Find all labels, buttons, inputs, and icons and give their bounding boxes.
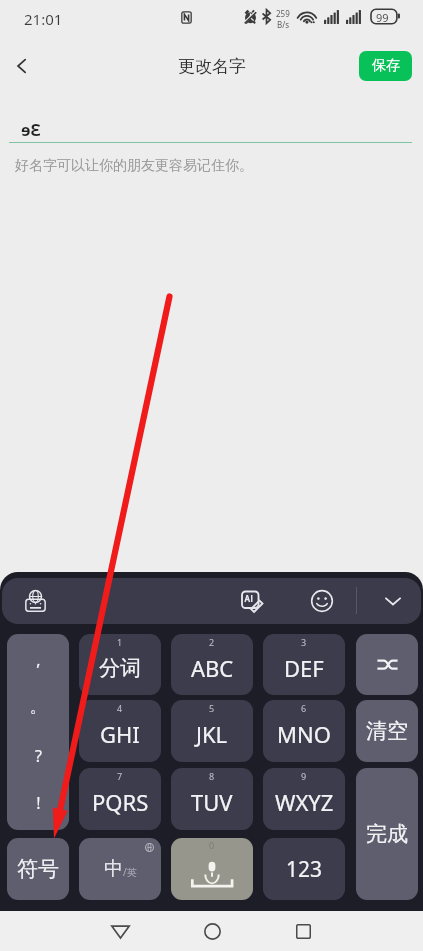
staticText: GHI	[100, 719, 140, 749]
button[interactable]: 清空	[356, 700, 418, 762]
button[interactable]: 中	[79, 838, 161, 900]
button[interactable]: 保存	[359, 51, 412, 81]
button[interactable]: 6	[263, 700, 345, 762]
staticText: 21:01	[24, 9, 63, 29]
staticText: 符号	[17, 856, 59, 882]
staticText: 1	[117, 636, 123, 648]
staticText: PQRS	[92, 787, 149, 817]
button[interactable]: 123	[263, 838, 345, 900]
staticText: WXYZ	[275, 787, 334, 817]
staticText: MNO	[277, 719, 331, 749]
staticText: DEF	[284, 653, 324, 683]
staticText: ɘƐ	[21, 119, 41, 141]
button[interactable]: Home	[188, 915, 237, 947]
staticText: ABC	[191, 653, 234, 683]
button[interactable]: Recents	[279, 915, 328, 947]
staticText: 保存	[372, 57, 400, 75]
staticText: 分词	[99, 655, 141, 681]
staticText: !	[36, 792, 41, 814]
button[interactable]: 符号	[7, 838, 69, 900]
staticText: 8	[209, 770, 215, 782]
staticText: 中	[104, 857, 123, 881]
staticText: 完成	[366, 821, 408, 847]
button[interactable]: 3	[263, 634, 345, 695]
button[interactable]: Hide keyboard	[367, 578, 419, 624]
staticText: 。	[30, 697, 46, 717]
staticText: /英	[123, 865, 137, 879]
staticText: TUV	[191, 787, 233, 817]
staticText: 4	[117, 702, 123, 714]
staticText: ,	[36, 649, 41, 671]
staticText: 259	[276, 8, 290, 19]
button[interactable]: Back	[96, 915, 145, 947]
staticText: 9	[301, 770, 307, 782]
staticText: 7	[117, 770, 123, 782]
button[interactable]: 9	[263, 768, 345, 830]
button[interactable]: Back	[0, 44, 44, 88]
staticText: 清空	[366, 718, 408, 744]
button[interactable]: 7	[79, 768, 161, 830]
staticText: 更改名字	[178, 56, 246, 77]
staticText: 3	[301, 636, 307, 648]
staticText: 0	[209, 839, 215, 851]
button[interactable]: 1	[79, 634, 161, 695]
button[interactable]: 8	[171, 768, 253, 830]
button[interactable]: AI write	[226, 578, 278, 624]
staticText: ?	[35, 745, 42, 767]
staticText: 2	[209, 636, 215, 648]
button[interactable]: Space and voice input	[171, 838, 253, 900]
button[interactable]: Emoji	[296, 578, 348, 624]
staticText: 123	[286, 855, 323, 884]
button[interactable]: 4	[79, 700, 161, 762]
button[interactable]: Backspace	[356, 634, 418, 695]
staticText: JKL	[196, 719, 228, 749]
button[interactable]: 2	[171, 634, 253, 695]
staticText: 6	[301, 702, 307, 714]
staticText: 5	[209, 702, 215, 714]
button[interactable]: Switch language	[9, 578, 61, 624]
staticText: 99	[376, 10, 389, 25]
button[interactable]: Punctuation	[7, 634, 69, 830]
button[interactable]: 5	[171, 700, 253, 762]
staticText: B/s	[277, 19, 290, 30]
staticText: 好名字可以让你的朋友更容易记住你。	[15, 157, 253, 175]
button[interactable]: 完成	[356, 768, 418, 900]
